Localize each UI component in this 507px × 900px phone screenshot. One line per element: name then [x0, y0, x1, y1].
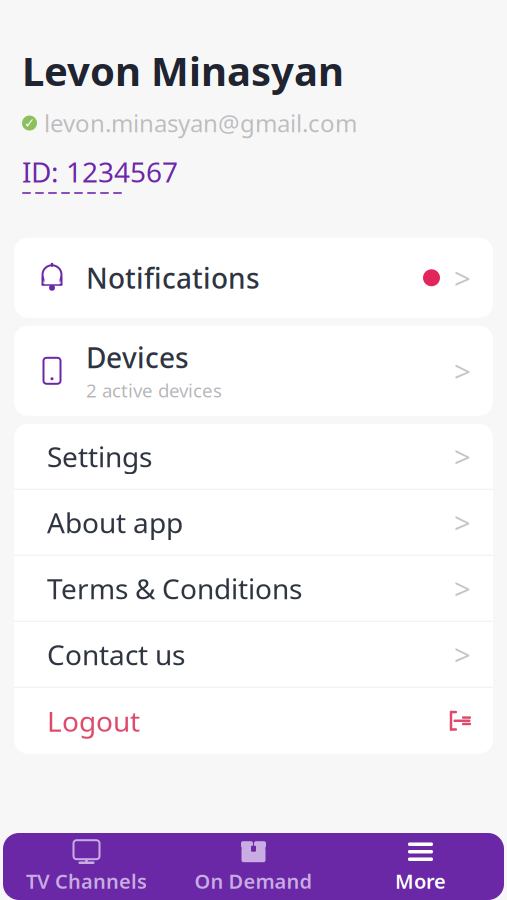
- button[interactable]: TV Channels: [3, 833, 170, 900]
- staticText: Contact us: [47, 636, 185, 673]
- staticText: levon.minasyan@gmail.com: [44, 107, 357, 139]
- staticText: Settings: [47, 438, 152, 475]
- staticText: Notifications: [86, 259, 260, 296]
- staticText: More: [395, 868, 446, 894]
- staticText: ✓: [24, 115, 35, 131]
- button[interactable]: About app: [14, 490, 493, 555]
- button[interactable]: More: [337, 833, 504, 900]
- staticText: >: [454, 569, 471, 608]
- button[interactable]: Terms & Conditions: [14, 556, 493, 621]
- button[interactable]: Devices: [14, 326, 493, 416]
- button[interactable]: Contact us: [14, 622, 493, 687]
- staticText: TV Channels: [26, 868, 147, 894]
- button[interactable]: On Demand: [170, 833, 337, 900]
- staticText: Levon Minasyan: [22, 44, 344, 97]
- staticText: About app: [47, 504, 183, 541]
- button[interactable]: ID: 1234567: [22, 153, 178, 194]
- staticText: >: [454, 351, 471, 390]
- button[interactable]: Settings: [14, 424, 493, 489]
- staticText: >: [454, 437, 471, 476]
- staticText: Devices: [86, 339, 189, 376]
- staticText: ID: 1234567: [22, 153, 178, 190]
- staticText: >: [454, 258, 471, 297]
- staticText: 2 active devices: [86, 378, 222, 403]
- button[interactable]: Logout: [14, 688, 493, 754]
- staticText: >: [454, 503, 471, 542]
- button[interactable]: Notifications: [14, 238, 493, 318]
- staticText: Logout: [47, 702, 140, 739]
- staticText: On Demand: [194, 868, 312, 894]
- staticText: >: [454, 635, 471, 674]
- staticText: Terms & Conditions: [47, 570, 302, 607]
